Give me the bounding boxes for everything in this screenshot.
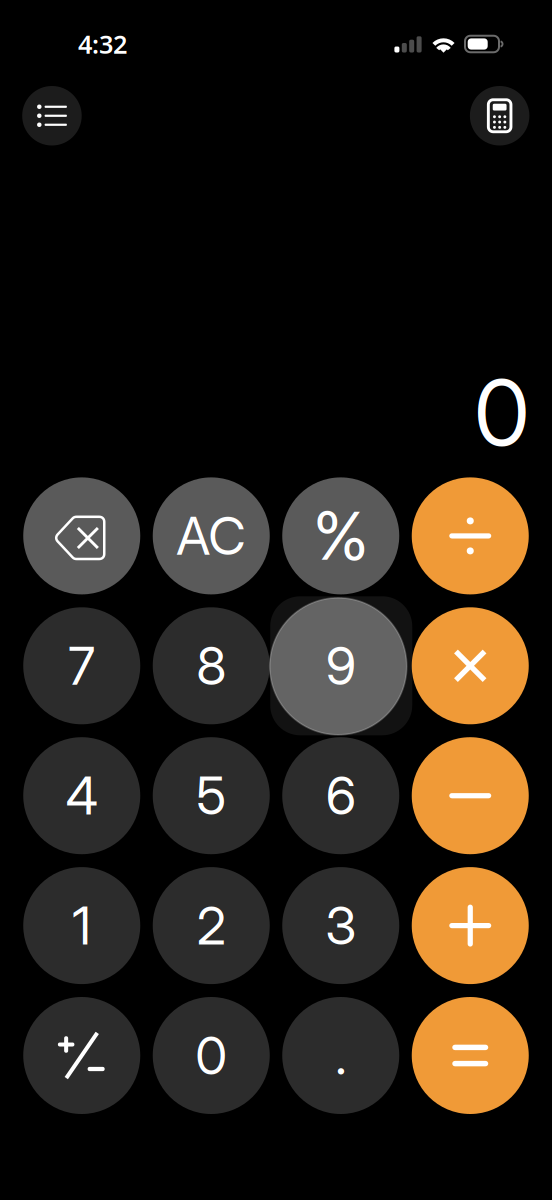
staticText: 7 xyxy=(68,634,95,697)
staticText: 1 xyxy=(72,894,91,957)
button[interactable]: 7 xyxy=(23,607,140,724)
staticText: . xyxy=(335,1024,346,1087)
button[interactable]: 0 xyxy=(153,997,270,1114)
staticText: 9 xyxy=(326,634,356,697)
staticText: 4 xyxy=(66,764,98,827)
button[interactable]: Multiply xyxy=(412,607,529,724)
staticText: 8 xyxy=(196,634,226,697)
button[interactable]: 5 xyxy=(153,737,270,854)
button[interactable]: 6 xyxy=(282,737,399,854)
button[interactable]: AC xyxy=(153,477,270,594)
button[interactable]: . xyxy=(282,997,399,1114)
staticText: 3 xyxy=(325,894,356,957)
button[interactable]: % xyxy=(282,477,399,594)
button[interactable]: Add xyxy=(412,867,529,984)
button[interactable]: 2 xyxy=(153,867,270,984)
staticText: AC xyxy=(176,504,246,567)
button[interactable]: Equals xyxy=(412,997,529,1114)
button[interactable]: History xyxy=(22,86,82,145)
staticText: 0 xyxy=(195,1024,227,1087)
button[interactable]: 3 xyxy=(282,867,399,984)
button[interactable]: 4 xyxy=(23,737,140,854)
staticText: 4:32 xyxy=(78,27,127,61)
staticText: 5 xyxy=(196,764,226,827)
button[interactable]: Scientific calculator xyxy=(470,86,529,145)
staticText: 6 xyxy=(326,764,356,827)
button[interactable]: Toggle sign xyxy=(23,997,140,1114)
button[interactable]: 9 xyxy=(282,607,399,724)
button[interactable]: 1 xyxy=(23,867,140,984)
staticText: 2 xyxy=(197,894,226,957)
staticText: 0 xyxy=(474,358,530,467)
button[interactable]: 8 xyxy=(153,607,270,724)
button[interactable]: Divide xyxy=(412,477,529,594)
staticText: % xyxy=(313,496,368,575)
button[interactable]: Subtract xyxy=(412,737,529,854)
button[interactable]: Delete xyxy=(23,477,140,594)
